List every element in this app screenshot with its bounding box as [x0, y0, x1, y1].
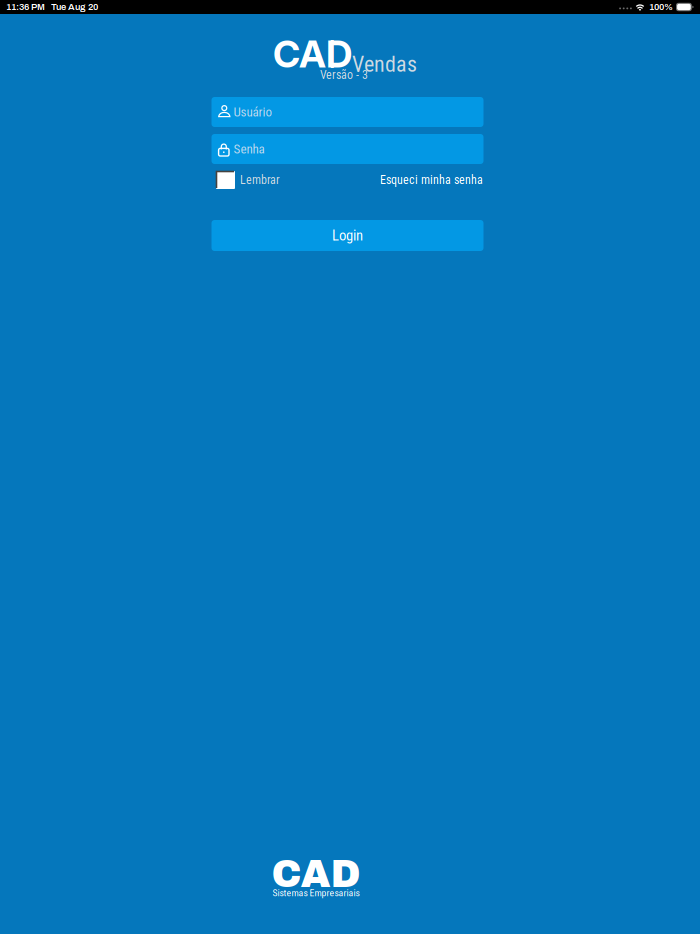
staticText: Sistemas Empresariais [272, 887, 359, 899]
button[interactable]: Senha [211, 134, 483, 164]
button[interactable]: Usuário [211, 97, 483, 127]
staticText: CAD [271, 853, 360, 895]
staticText: Tue Aug 20 [51, 2, 98, 12]
staticText: 11:36 PM [6, 2, 45, 12]
button[interactable]: Login [211, 220, 483, 251]
staticText: Versão - 3 [320, 68, 368, 82]
staticText: 100% [649, 2, 673, 12]
staticText: CAD [273, 31, 352, 77]
button[interactable]: Esqueci minha senha [380, 173, 483, 187]
button[interactable]: Lembrar [216, 171, 280, 189]
staticText: Senha [234, 141, 265, 157]
staticText: Vendas [352, 51, 417, 77]
staticText: Esqueci minha senha [380, 173, 483, 187]
staticText: Lembrar [240, 173, 280, 187]
staticText: Login [332, 227, 363, 244]
staticText: Usuário [234, 104, 273, 120]
